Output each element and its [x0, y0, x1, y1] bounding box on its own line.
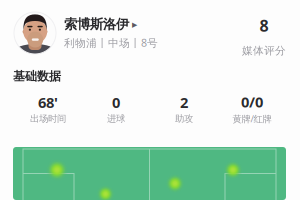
staticText: 媒体评分	[242, 44, 286, 57]
staticText: 8	[259, 15, 268, 36]
staticText: 出场时间	[30, 113, 66, 124]
staticText: 助攻	[175, 113, 193, 124]
staticText: 0/0	[241, 92, 263, 111]
staticText: 索博斯洛伊	[64, 16, 129, 33]
staticText: 利物浦丨中场丨8号	[64, 36, 158, 50]
staticText: 68'	[38, 92, 58, 112]
button[interactable]: 索博斯洛伊	[14, 12, 214, 54]
staticText: ▸	[132, 18, 137, 30]
staticText: 进球	[107, 113, 125, 124]
staticText: 0	[112, 92, 120, 112]
staticText: 基础数据	[13, 69, 61, 84]
staticText: 2	[180, 92, 188, 112]
staticText: 黄牌/红牌	[232, 112, 271, 125]
